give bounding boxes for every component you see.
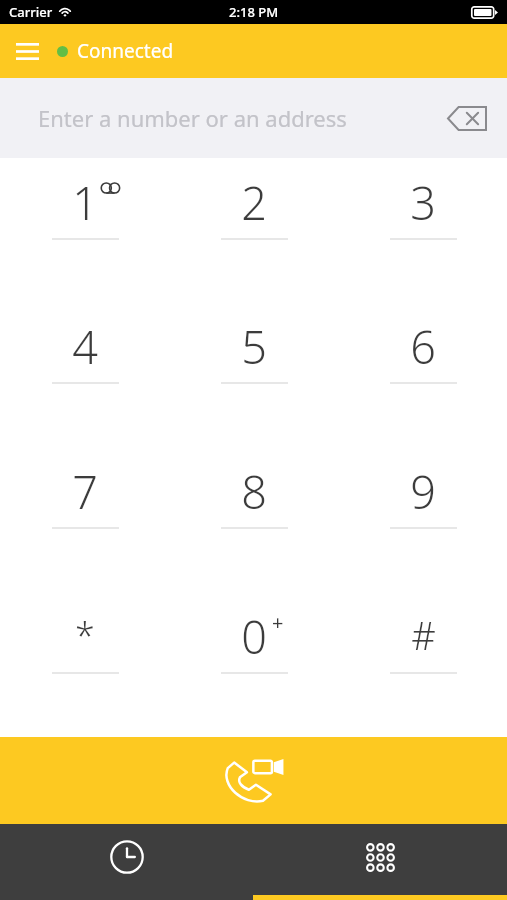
button[interactable]: 9 — [338, 447, 507, 592]
button[interactable]: 7 — [0, 447, 169, 592]
staticText: Connected — [77, 38, 174, 64]
staticText: # — [411, 609, 436, 661]
button[interactable]: # — [338, 592, 507, 737]
button[interactable]: 4 — [0, 302, 169, 447]
staticText: 2:18 PM — [229, 3, 279, 21]
staticText: Carrier — [9, 3, 53, 21]
button[interactable]: 5 — [169, 302, 338, 447]
button[interactable]: 3 — [338, 158, 507, 302]
staticText: + — [272, 609, 284, 636]
button[interactable]: 2 — [169, 158, 338, 302]
button[interactable]: 8 — [169, 447, 338, 592]
staticText: 5 — [241, 316, 267, 374]
button[interactable]: * — [0, 592, 169, 737]
button[interactable]: Recents — [0, 824, 253, 900]
staticText: 2 — [241, 172, 267, 230]
button[interactable]: Keypad — [253, 824, 507, 900]
staticText: 3 — [410, 172, 436, 230]
staticText: Enter a number or an address — [38, 103, 347, 133]
staticText: 4 — [72, 316, 98, 374]
staticText: 8 — [241, 461, 267, 519]
button[interactable]: 0 — [169, 592, 338, 737]
button[interactable]: Backspace — [439, 90, 495, 146]
button[interactable]: Menu — [0, 24, 54, 78]
staticText: 6 — [410, 316, 436, 374]
button[interactable]: 1 — [0, 158, 169, 302]
button[interactable]: 6 — [338, 302, 507, 447]
staticText: 0 — [241, 606, 267, 664]
staticText: 7 — [72, 461, 98, 519]
staticText: 1 — [72, 172, 98, 230]
staticText: * — [75, 611, 95, 660]
button[interactable]: Video call — [0, 737, 507, 824]
staticText: 9 — [410, 461, 436, 519]
